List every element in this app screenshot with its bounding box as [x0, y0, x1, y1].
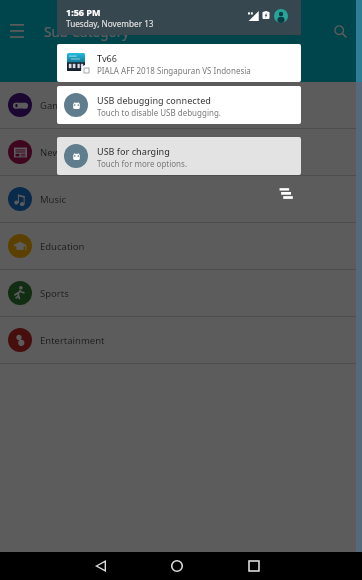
staticText: USB debugging connected	[97, 94, 211, 106]
button[interactable]: Sports	[0, 270, 362, 316]
button[interactable]: User profile	[274, 9, 288, 23]
button[interactable]: Education	[0, 223, 362, 269]
staticText: Sub Category	[44, 23, 130, 41]
staticText: Tuesday, November 13	[66, 18, 154, 29]
button[interactable]: Home	[162, 552, 192, 580]
staticText: Tv66	[97, 52, 117, 64]
button[interactable]: Games	[0, 82, 362, 128]
button[interactable]: Recent apps	[239, 552, 269, 580]
button[interactable]: USB debugging connected	[57, 86, 301, 124]
staticText: USB for charging	[97, 145, 170, 157]
button[interactable]: Music	[0, 176, 362, 222]
staticText: PIALA AFF 2018 Singapuran VS Indonesia	[97, 65, 297, 76]
staticText: Entertainment	[40, 334, 105, 347]
button[interactable]: USB for charging	[57, 137, 301, 175]
staticText: Touch to disable USB debugging.	[97, 107, 297, 118]
staticText: Sports	[40, 287, 69, 300]
staticText: Games	[40, 99, 72, 112]
staticText: News	[40, 146, 65, 159]
button[interactable]: News	[0, 129, 362, 175]
staticText: Education	[40, 240, 85, 253]
staticText: 1:56 PM	[66, 6, 101, 18]
button[interactable]: Entertainment	[0, 317, 362, 363]
button[interactable]: Open navigation menu	[5, 19, 29, 43]
staticText: Music	[40, 193, 67, 206]
button[interactable]: Tv66	[57, 44, 301, 82]
button[interactable]: Sort	[272, 180, 296, 204]
button[interactable]: Back	[86, 552, 116, 580]
staticText: Touch for more options.	[97, 158, 297, 169]
button[interactable]: Search	[328, 19, 352, 43]
